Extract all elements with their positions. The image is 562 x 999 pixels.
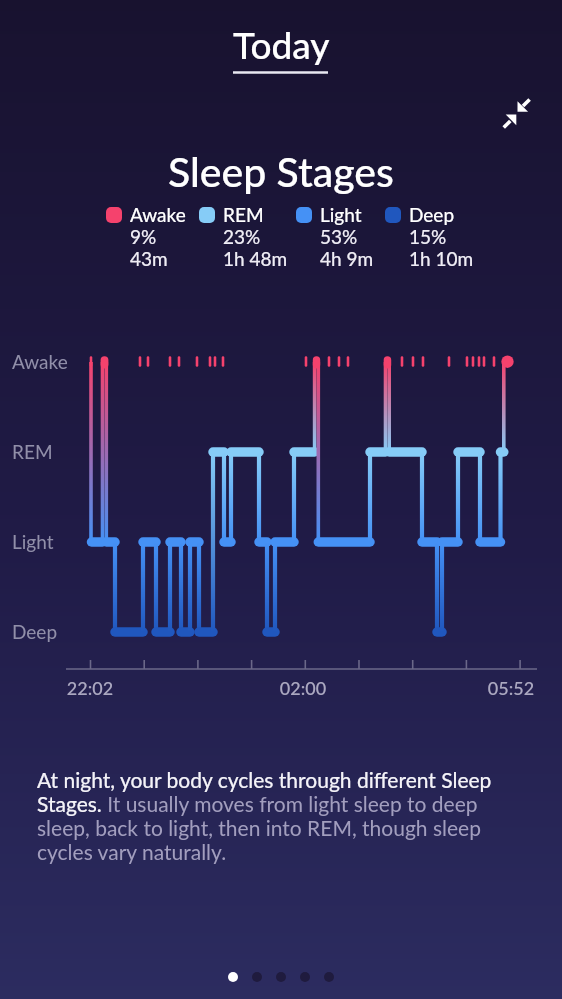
staticText: Awake xyxy=(130,203,186,226)
staticText: 4h 9m xyxy=(320,247,374,270)
button[interactable] xyxy=(228,972,238,982)
staticText: Awake xyxy=(12,350,68,373)
staticText: 1h 10m xyxy=(409,247,474,270)
button[interactable] xyxy=(252,972,262,982)
staticText: Light xyxy=(320,203,362,226)
staticText: Deep xyxy=(409,203,455,226)
staticText: At night, your body cycles through diffe… xyxy=(37,767,537,864)
staticText: Deep xyxy=(12,620,58,643)
staticText: 9% xyxy=(130,225,157,248)
button[interactable] xyxy=(276,972,286,982)
staticText: Light xyxy=(12,530,54,553)
button[interactable] xyxy=(499,96,535,132)
staticText: REM xyxy=(223,203,264,226)
staticText: 05:52 xyxy=(461,677,561,699)
staticText: 15% xyxy=(409,225,447,248)
staticText: 02:00 xyxy=(253,677,353,699)
button[interactable] xyxy=(324,972,334,982)
staticText: 1h 48m xyxy=(223,247,288,270)
staticText: 22:02 xyxy=(40,677,140,699)
staticText: Sleep Stages xyxy=(168,147,394,196)
button[interactable] xyxy=(300,972,310,982)
staticText: 53% xyxy=(320,225,358,248)
staticText: REM xyxy=(12,440,53,463)
staticText: 43m xyxy=(130,247,168,270)
button[interactable]: Today xyxy=(233,22,330,66)
staticText: 23% xyxy=(223,225,261,248)
